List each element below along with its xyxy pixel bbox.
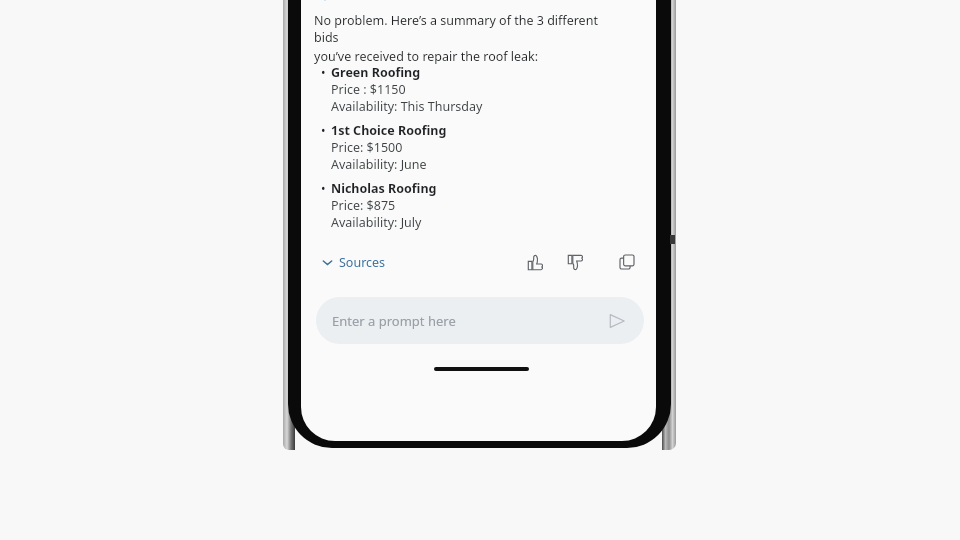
staticText: Nicholas Roofing: [331, 180, 437, 197]
button[interactable]: Enter a prompt here: [316, 297, 644, 344]
staticText: •: [321, 122, 326, 138]
button[interactable]: Send: [606, 310, 628, 332]
staticText: Availability: July: [331, 214, 422, 231]
staticText: you’ve received to repair the roof leak:: [314, 48, 539, 65]
staticText: Availability: This Thursday: [331, 98, 483, 115]
staticText: •: [321, 180, 326, 196]
staticText: No problem. Here’s a summary of the 3 di…: [314, 12, 624, 46]
staticText: Enter a prompt here: [332, 312, 606, 330]
other: Gemini: [314, 0, 336, 2]
button[interactable]: Sources: [318, 250, 390, 275]
staticText: •: [321, 64, 326, 80]
button[interactable]: Thumb down: [562, 249, 588, 275]
staticText: Price: $1500: [331, 139, 403, 156]
staticText: Price: $875: [331, 197, 396, 214]
staticText: 1st Choice Roofing: [331, 122, 447, 139]
staticText: Price : $1150: [331, 81, 406, 98]
staticText: Availability: June: [331, 156, 427, 173]
button[interactable]: Thumb up: [522, 249, 548, 275]
staticText: Sources: [339, 254, 386, 271]
staticText: Green Roofing: [331, 64, 421, 81]
button[interactable]: Copy: [614, 249, 640, 275]
